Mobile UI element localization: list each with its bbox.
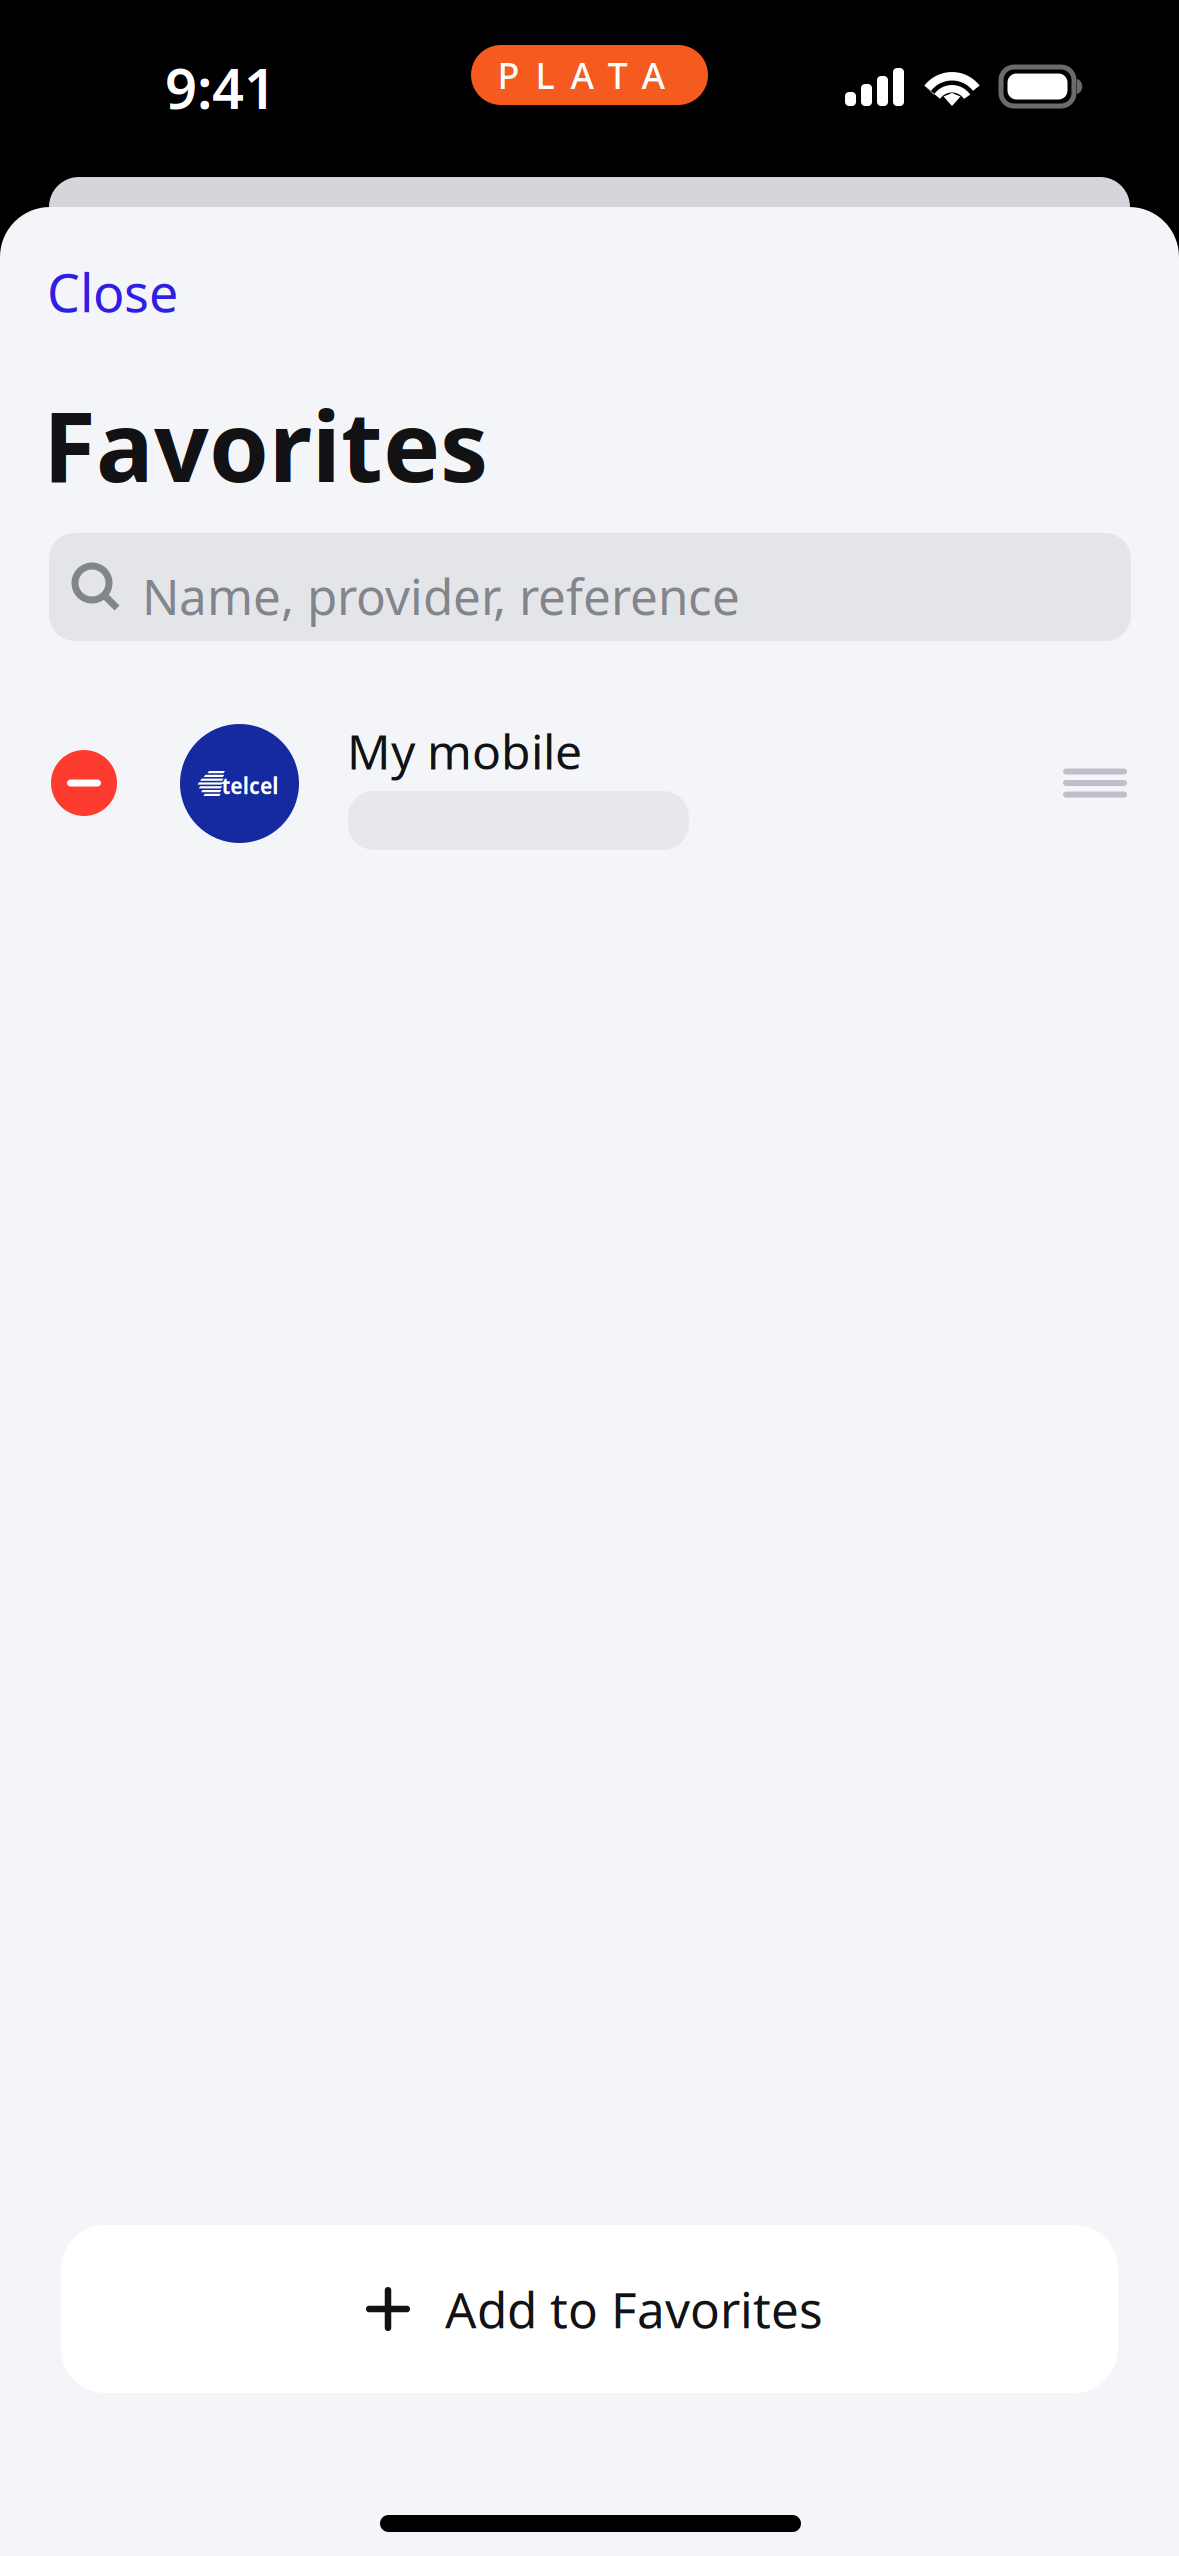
- button[interactable]: Close: [47, 244, 267, 340]
- button[interactable]: Remove My mobile from Favorites: [39, 738, 129, 828]
- staticText: Name, provider, reference: [142, 563, 740, 628]
- button[interactable]: Reorder My mobile: [1035, 723, 1155, 843]
- staticText: Close: [47, 257, 178, 327]
- staticText: My mobile: [347, 719, 582, 783]
- button[interactable]: Name, provider, reference: [49, 533, 1131, 641]
- staticText: PLATA: [497, 51, 665, 99]
- staticText: Favorites: [43, 381, 488, 508]
- staticText: Add to Favorites: [445, 2276, 823, 2342]
- button[interactable]: My mobile, Telcel: [180, 688, 1080, 878]
- button[interactable]: Add to Favorites: [61, 2225, 1118, 2393]
- staticText: 9:41: [165, 50, 276, 124]
- staticText: telcel: [195, 758, 305, 811]
